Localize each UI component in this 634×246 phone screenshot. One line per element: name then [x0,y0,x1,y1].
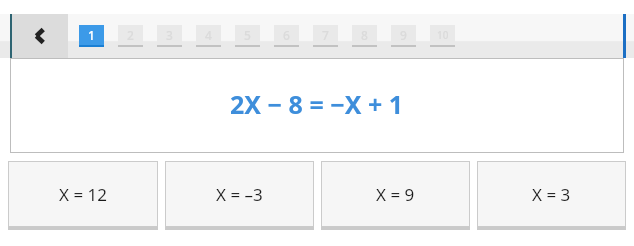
staticText: 2X − 8 = −X + 1 [230,87,404,121]
staticText: 2 [127,27,134,43]
button[interactable]: X = 9 [321,161,470,227]
staticText: X = 9 [376,183,415,206]
staticText: 10 [437,28,449,42]
staticText: 3 [166,27,173,43]
button[interactable]: 5 [235,25,260,47]
staticText: 8 [361,27,368,43]
button[interactable]: 1 [79,25,104,47]
staticText: 6 [283,27,290,43]
button[interactable]: X = –3 [165,161,314,227]
staticText: 1 [88,27,95,43]
staticText: 4 [205,27,212,43]
button[interactable]: 8 [352,25,377,47]
staticText: 5 [244,27,251,43]
button[interactable]: 9 [391,25,416,47]
button[interactable]: Back [12,14,68,58]
button[interactable]: 3 [157,25,182,47]
staticText: X = 12 [59,183,107,206]
button[interactable]: X = 12 [8,161,158,227]
button[interactable]: 7 [313,25,338,47]
button[interactable]: 4 [196,25,221,47]
staticText: 9 [400,27,407,43]
staticText: X = –3 [216,183,263,206]
button[interactable]: 10 [430,25,455,47]
button[interactable]: 6 [274,25,299,47]
button[interactable]: 2 [118,25,143,47]
staticText: X = 3 [532,183,571,206]
button[interactable]: X = 3 [477,161,626,227]
staticText: 7 [322,27,329,43]
